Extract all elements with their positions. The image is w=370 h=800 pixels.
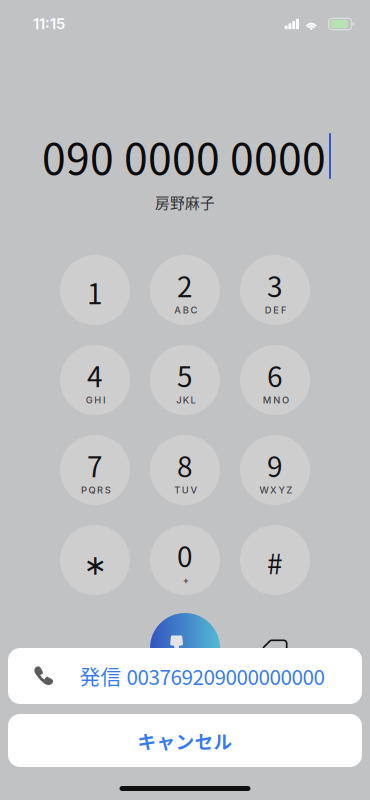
staticText: # bbox=[267, 542, 283, 582]
button[interactable]: 9 bbox=[240, 435, 310, 505]
staticText: 090 0000 0000 bbox=[42, 125, 326, 187]
staticText: 9 bbox=[267, 445, 283, 485]
staticText: TUV bbox=[174, 484, 197, 496]
button[interactable]: 7 bbox=[60, 435, 130, 505]
staticText: + bbox=[183, 574, 189, 586]
button[interactable]: 1 bbox=[60, 255, 130, 325]
button[interactable]: 2 bbox=[150, 255, 220, 325]
staticText: 6 bbox=[267, 355, 283, 395]
staticText: PQRS bbox=[81, 484, 111, 496]
button[interactable]: 4 bbox=[60, 345, 130, 415]
staticText: ABC bbox=[174, 304, 197, 316]
button[interactable]: 3 bbox=[240, 255, 310, 325]
staticText: WXYZ bbox=[259, 484, 292, 496]
staticText: 発信 003769209000000000 bbox=[79, 661, 324, 691]
button[interactable]: ∗ bbox=[60, 525, 130, 595]
staticText: 3 bbox=[267, 265, 283, 305]
staticText: JKL bbox=[176, 394, 195, 406]
staticText: 0 bbox=[177, 535, 193, 575]
button[interactable]: 5 bbox=[150, 345, 220, 415]
button[interactable]: Call bbox=[150, 613, 220, 683]
button[interactable]: キャンセル bbox=[8, 714, 362, 767]
staticText: 5 bbox=[177, 355, 193, 395]
button[interactable]: Delete bbox=[240, 613, 310, 683]
staticText: 7 bbox=[87, 445, 103, 485]
staticText: ∗ bbox=[83, 549, 106, 581]
staticText: 1 bbox=[87, 272, 103, 312]
button[interactable]: # bbox=[240, 525, 310, 595]
staticText: MNO bbox=[263, 394, 289, 406]
button[interactable]: 0 bbox=[150, 525, 220, 595]
staticText: 8 bbox=[177, 445, 193, 485]
staticText: 房野麻子 bbox=[155, 191, 215, 213]
staticText: GHI bbox=[86, 394, 106, 406]
staticText: 4 bbox=[87, 355, 103, 395]
button[interactable]: 発信 003769209000000000 bbox=[8, 648, 362, 704]
staticText: DEF bbox=[265, 304, 287, 316]
staticText: キャンセル bbox=[137, 727, 232, 754]
staticText: 11:15 bbox=[33, 15, 65, 33]
staticText: 2 bbox=[177, 265, 193, 305]
button[interactable]: 8 bbox=[150, 435, 220, 505]
button[interactable]: 6 bbox=[240, 345, 310, 415]
